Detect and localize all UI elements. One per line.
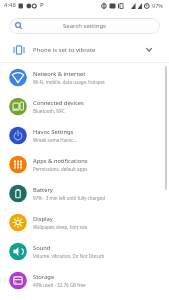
staticText: Display [33,215,53,223]
staticText: Permissions, default apps [33,166,88,172]
staticText: P [40,1,44,9]
staticText: 4:48 [4,1,16,9]
staticText: Wi-Fi, mobile, data usage, hotspot [33,79,105,85]
staticText: Apps & notifications [33,157,88,165]
staticText: Battery [33,186,53,194]
staticText: Search settings [63,22,106,30]
button[interactable]: Network & internet [0,63,169,92]
staticText: Volume, vibration, Do Not Disturb [33,253,105,259]
staticText: Sound [33,244,51,252]
button[interactable]: Connected devices [0,92,169,121]
staticText: Storage [33,273,55,281]
staticText: Phone is set to vibrate [33,46,96,54]
staticText: Bluetooth, NFC [33,108,65,114]
staticText: Wreak some Havoc... [33,137,77,143]
button[interactable]: Apps & notifications [0,150,169,179]
button[interactable]: Phone is set to vibrate [0,36,169,62]
staticText: Connected devices [33,99,84,107]
staticText: 49% used - 32.76 GB free [33,282,86,288]
button[interactable]: Storage [0,266,169,295]
staticText: Havoc Settings [33,128,74,136]
staticText: Network & internet [33,70,86,78]
button[interactable]: Battery [0,179,169,208]
staticText: 97% - 3 min left until fully charged [33,195,105,201]
button[interactable]: Search settings [9,18,160,34]
button[interactable]: Sound [0,237,169,266]
button[interactable]: Display [0,208,169,237]
button[interactable]: Havoc Settings [0,121,169,150]
staticText: Wallpaper, sleep, font size [33,224,88,230]
staticText: 97% [152,2,163,9]
